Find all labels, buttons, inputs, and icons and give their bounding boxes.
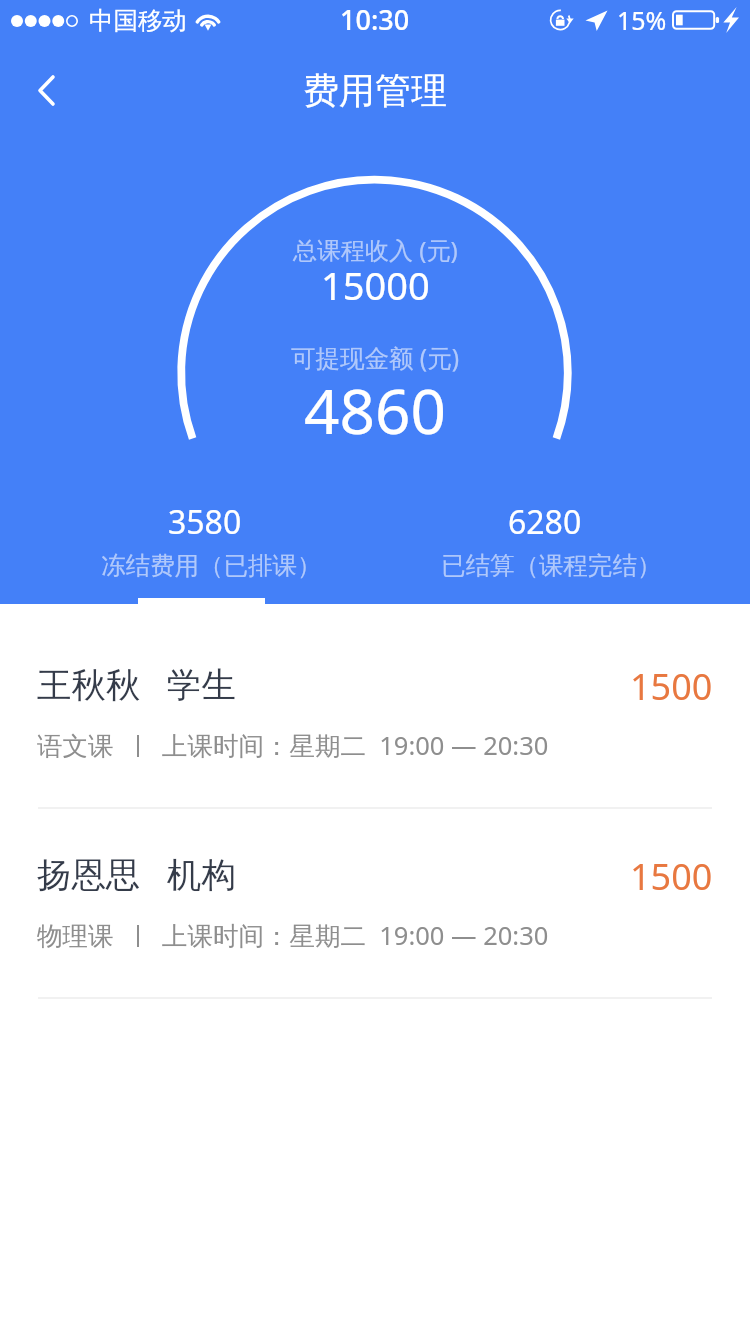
staticText: 机构 [167,854,236,897]
staticText: 1500 [630,852,713,901]
staticText: 冻结费用（已排课） [101,550,322,581]
staticText: 15% [617,3,667,37]
staticText: 10:30 [340,1,410,38]
button[interactable]: 扬恩思 [0,809,750,999]
button[interactable]: 6280 [375,500,715,581]
staticText: 6280 [508,500,582,544]
staticText: 3580 [168,500,242,544]
staticText: 总课程收入 (元) [293,233,458,266]
staticText: 费用管理 [303,68,447,113]
staticText: 15000 [321,259,430,311]
staticText: 王秋秋 [37,664,141,707]
staticText: 可提现金额 (元) [291,341,460,374]
button[interactable]: Back [0,44,92,136]
staticText: 学生 [167,664,236,707]
button[interactable]: 王秋秋 [0,619,750,809]
staticText: 上课时间：星期二 19:00 — 20:30 [162,918,549,953]
staticText: 已结算（课程完结） [441,550,662,581]
staticText: 物理课 [37,920,114,952]
staticText: 1500 [630,662,713,711]
staticText: 语文课 [37,730,114,762]
staticText: 中国移动 [89,5,187,36]
staticText: 扬恩思 [37,854,141,897]
staticText: 4860 [304,368,446,452]
button[interactable]: 3580 [35,500,375,581]
staticText: 上课时间：星期二 19:00 — 20:30 [162,728,549,763]
